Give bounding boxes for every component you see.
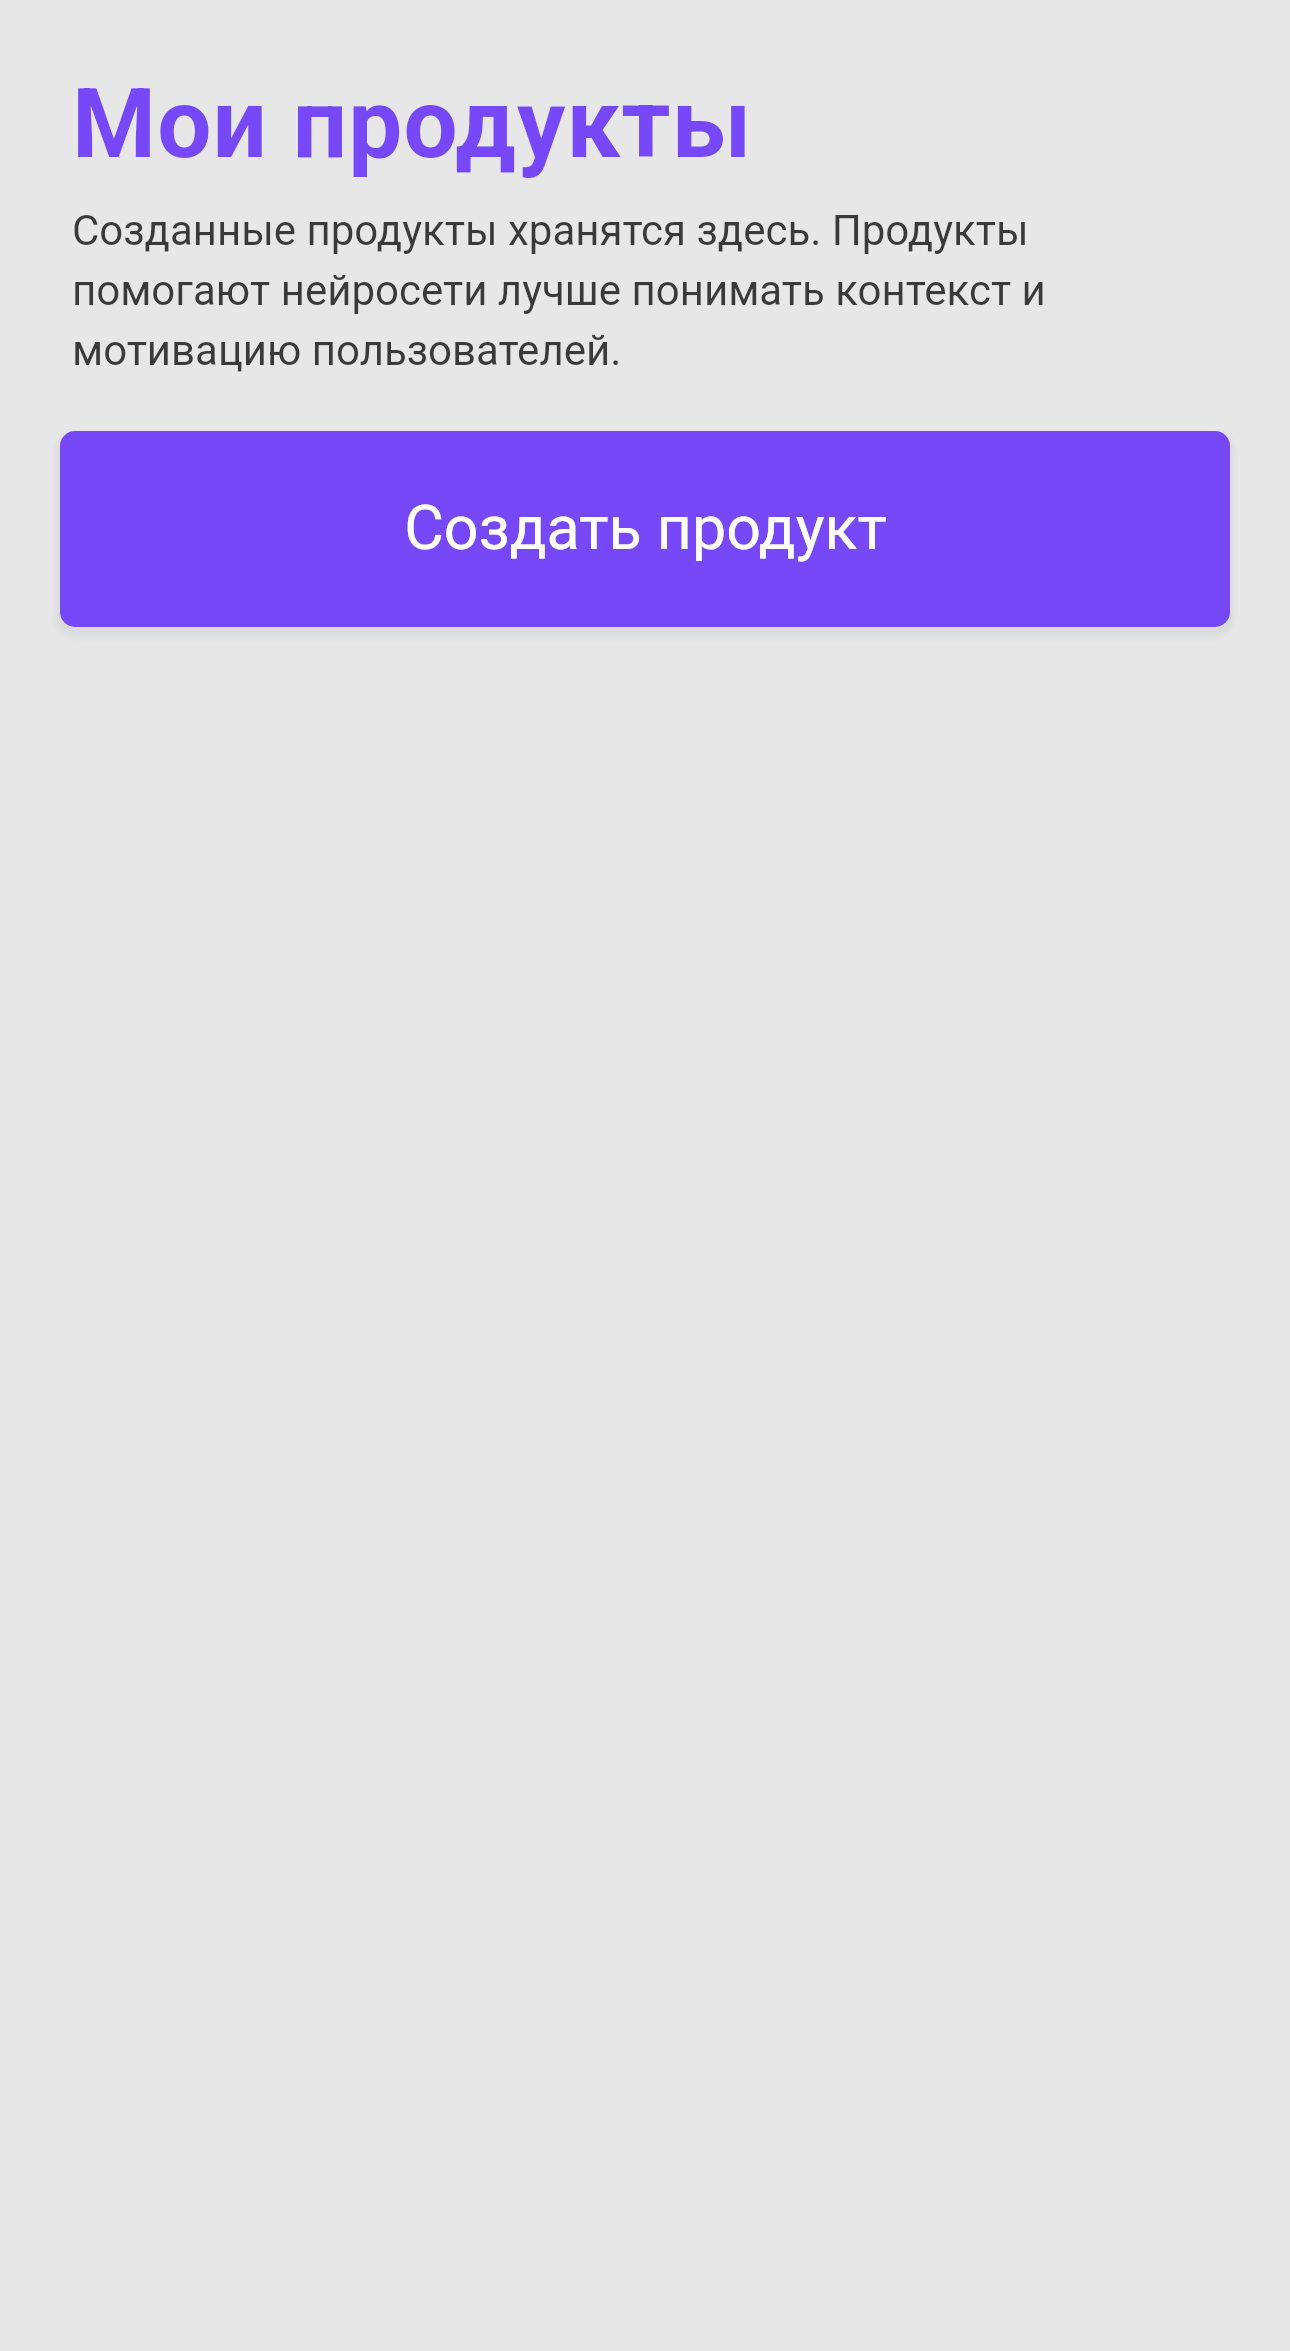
- staticText: Создать продукт: [404, 492, 887, 563]
- button[interactable]: Создать продукт: [60, 431, 1230, 627]
- staticText: Созданные продукты хранятся здесь. Проду…: [72, 206, 1077, 375]
- staticText: Мои продукты: [72, 68, 753, 181]
